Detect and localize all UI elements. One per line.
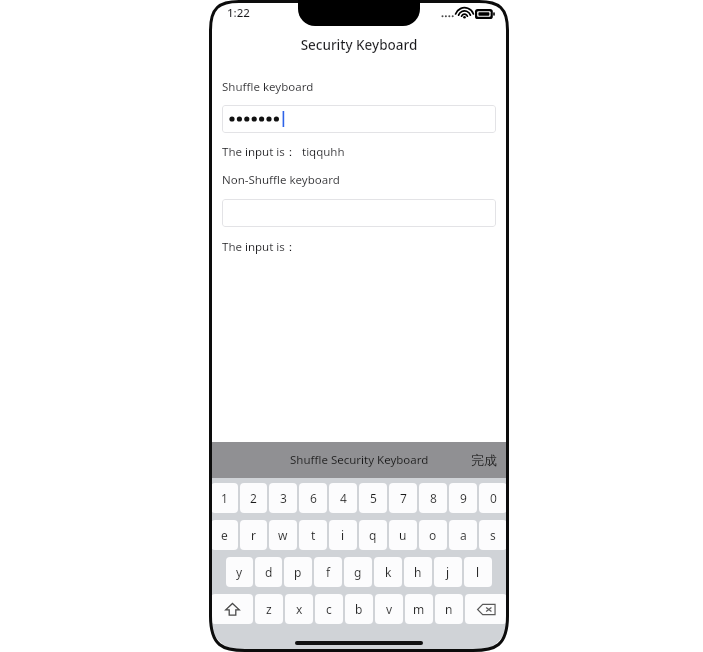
staticText: y [236,564,243,580]
button[interactable]: b [345,594,373,624]
button[interactable]: m [405,594,433,624]
button[interactable]: 8 [419,483,447,513]
staticText: d [265,564,273,580]
button[interactable]: v [375,594,403,624]
staticText: w [278,527,288,543]
staticText: i [341,527,345,543]
staticText: The input is： [222,144,297,160]
staticText: c [326,601,332,617]
button[interactable]: d [255,557,282,587]
staticText: Non-Shuffle keyboard [222,172,340,188]
staticText: 4 [340,490,347,506]
button[interactable]: f [314,557,342,587]
staticText: 1:22 [227,5,250,21]
button[interactable]: y [226,557,253,587]
staticText: b [355,601,363,617]
button[interactable]: u [389,520,417,550]
button[interactable]: x [285,594,313,624]
staticText: a [460,527,467,543]
staticText: 1 [221,490,228,506]
button[interactable]: Backspace [465,594,507,624]
staticText: s [490,527,496,543]
staticText: 2 [250,490,257,506]
staticText: x [296,601,303,617]
button[interactable]: 4 [329,483,357,513]
button[interactable]: 3 [269,483,297,513]
button[interactable]: 0 [479,483,507,513]
button[interactable]: h [404,557,432,587]
staticText: The input is： [222,239,297,255]
button[interactable]: 2 [240,483,267,513]
staticText: n [445,601,453,617]
staticText: t [311,527,316,543]
staticText: 8 [430,490,437,506]
button[interactable]: q [359,520,387,550]
staticText: 9 [460,490,467,506]
staticText: z [266,601,272,617]
staticText: f [326,564,331,580]
button[interactable]: i [329,520,357,550]
button[interactable]: l [464,557,492,587]
staticText: g [354,564,362,580]
button[interactable]: a [449,520,477,550]
staticText: r [251,527,256,543]
button[interactable]: g [344,557,372,587]
button[interactable]: t [299,520,327,550]
button[interactable] [222,105,496,133]
button[interactable]: z [255,594,283,624]
staticText: v [386,601,393,617]
button[interactable]: 1 [211,483,238,513]
staticText: 5 [370,490,377,506]
staticText: Shuffle Security Keyboard [290,452,429,468]
button[interactable]: 完成 [471,452,497,468]
staticText: j [446,564,450,580]
staticText: 6 [310,490,317,506]
staticText: e [221,527,228,543]
button[interactable]: 7 [389,483,417,513]
staticText: u [399,527,407,543]
staticText: m [413,601,425,617]
button[interactable]: s [479,520,507,550]
button[interactable]: c [315,594,343,624]
staticText: Shuffle keyboard [222,79,314,95]
button[interactable]: Shift [211,594,253,624]
button[interactable]: j [434,557,462,587]
staticText: l [476,564,480,580]
staticText: k [385,564,392,580]
button[interactable]: 9 [449,483,477,513]
button[interactable]: r [240,520,267,550]
button[interactable] [222,199,496,227]
staticText: h [414,564,422,580]
staticText: tiqquhh [302,144,345,160]
button[interactable]: w [269,520,297,550]
staticText: q [369,527,377,543]
staticText: 3 [280,490,287,506]
button[interactable]: e [211,520,238,550]
staticText: p [294,564,302,580]
button[interactable]: n [435,594,463,624]
staticText: 0 [490,490,497,506]
staticText: o [429,527,437,543]
button[interactable]: k [374,557,402,587]
button[interactable]: 5 [359,483,387,513]
button[interactable]: p [284,557,312,587]
button[interactable]: 6 [299,483,327,513]
button[interactable]: o [419,520,447,550]
staticText: 7 [400,490,407,506]
staticText: Security Keyboard [209,36,509,54]
